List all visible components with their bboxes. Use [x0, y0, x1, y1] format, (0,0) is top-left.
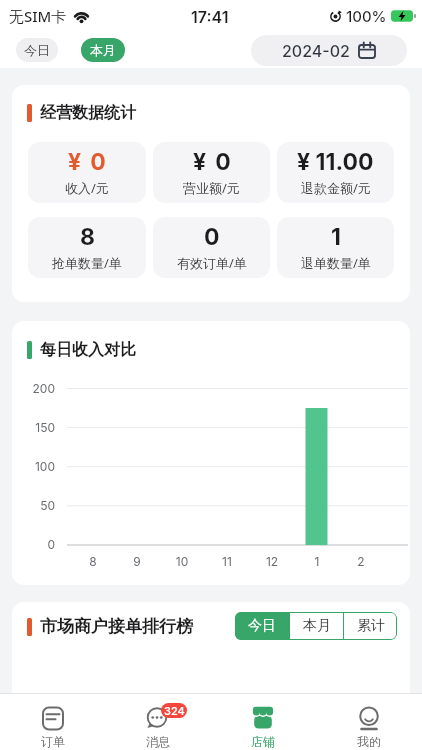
- staticText: 订单: [41, 734, 65, 749]
- button[interactable]: 324: [105, 694, 210, 750]
- staticText: 2024-02: [282, 41, 350, 60]
- staticText: 经营数据统计: [40, 103, 136, 123]
- button[interactable]: 店铺: [210, 694, 316, 750]
- staticText: 12: [257, 554, 287, 569]
- staticText: 累计: [357, 617, 385, 635]
- staticText: 1: [302, 554, 332, 569]
- button[interactable]: 我的: [316, 694, 422, 750]
- staticText: ¥ 11.00: [297, 148, 374, 176]
- staticText: 今日: [24, 42, 50, 58]
- staticText: 每日收入对比: [40, 340, 136, 360]
- staticText: 0: [15, 537, 55, 552]
- staticText: 收入/元: [65, 179, 109, 197]
- button[interactable]: 今日: [16, 38, 58, 62]
- staticText: ¥ 0: [193, 148, 231, 176]
- button[interactable]: 本月: [290, 612, 343, 640]
- staticText: 100%: [346, 7, 387, 25]
- staticText: 17:41: [191, 7, 229, 26]
- button[interactable]: 8: [28, 217, 146, 278]
- staticText: 今日: [248, 617, 276, 635]
- staticText: 9: [122, 554, 152, 569]
- staticText: 0: [204, 223, 220, 251]
- staticText: 我的: [357, 734, 381, 749]
- staticText: 无SIM卡: [9, 6, 67, 26]
- staticText: 200: [15, 381, 55, 396]
- staticText: 退款金额/元: [301, 179, 371, 197]
- button[interactable]: ¥ 11.00: [277, 142, 394, 203]
- staticText: 有效订单/单: [177, 254, 247, 272]
- staticText: 2: [346, 554, 376, 569]
- staticText: ¥ 0: [68, 148, 106, 176]
- staticText: 市场商户接单排行榜: [40, 616, 193, 637]
- staticText: 50: [15, 498, 55, 513]
- button[interactable]: ¥ 0: [28, 142, 146, 203]
- button[interactable]: 2024-02: [251, 35, 407, 66]
- button[interactable]: 累计: [344, 612, 397, 640]
- button[interactable]: 1: [277, 217, 394, 278]
- staticText: 店铺: [251, 734, 275, 749]
- staticText: 退单数量/单: [301, 254, 371, 272]
- staticText: 10: [167, 554, 197, 569]
- staticText: 324: [164, 704, 185, 717]
- button[interactable]: 0: [153, 217, 270, 278]
- button[interactable]: ¥ 0: [153, 142, 270, 203]
- staticText: 8: [78, 554, 108, 569]
- staticText: 8: [80, 223, 95, 251]
- button[interactable]: 今日: [235, 612, 289, 640]
- button[interactable]: 本月: [81, 38, 125, 62]
- staticText: 营业额/元: [183, 179, 240, 197]
- staticText: 150: [15, 420, 55, 435]
- staticText: 11: [212, 554, 242, 569]
- staticText: 消息: [146, 734, 170, 749]
- button[interactable]: 订单: [0, 694, 105, 750]
- staticText: 抢单数量/单: [52, 254, 122, 272]
- staticText: 1: [331, 223, 341, 251]
- staticText: 本月: [303, 617, 331, 635]
- staticText: 100: [15, 459, 55, 474]
- staticText: 本月: [90, 42, 116, 58]
